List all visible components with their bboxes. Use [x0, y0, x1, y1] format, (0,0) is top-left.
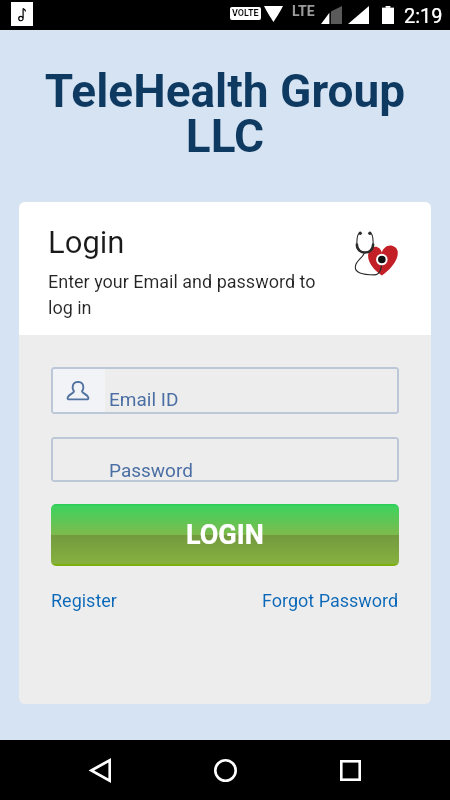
button[interactable]: Password — [51, 437, 399, 482]
button[interactable]: Back — [74, 744, 126, 796]
staticText: VOLTE — [232, 8, 259, 19]
staticText: Enter your Email and password to log in — [48, 271, 316, 318]
staticText: Password — [109, 459, 193, 481]
button[interactable]: Home — [199, 744, 251, 796]
staticText: 2:19 — [404, 4, 443, 27]
button[interactable]: LOGIN — [51, 504, 399, 566]
button[interactable]: Recent apps — [324, 744, 376, 796]
staticText: TeleHealth Group LLC — [22, 64, 428, 164]
button[interactable]: Forgot Password — [262, 590, 399, 611]
staticText: Email ID — [109, 388, 179, 410]
staticText: Login — [48, 224, 125, 260]
staticText: LOGIN — [186, 519, 264, 551]
staticText: Register — [51, 590, 117, 611]
button[interactable]: Email ID — [51, 367, 399, 414]
staticText: Forgot Password — [262, 590, 399, 611]
staticText: LTE — [292, 3, 315, 19]
button[interactable]: Register — [51, 590, 117, 611]
